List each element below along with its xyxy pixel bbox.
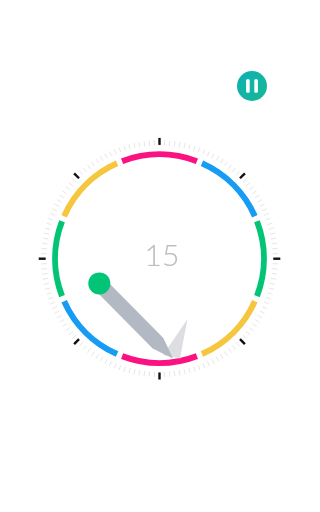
staticText: 15 [112, 236, 212, 280]
button[interactable]: Pause [237, 71, 267, 101]
